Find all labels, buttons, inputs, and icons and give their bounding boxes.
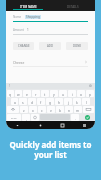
- button[interactable]: f: [37, 98, 45, 105]
- button[interactable]: Recents: [51, 121, 73, 129]
- staticText: Cheese: [13, 60, 84, 64]
- staticText: ?123: [11, 116, 17, 119]
- staticText: d: [31, 100, 34, 104]
- button[interactable]: CHANGE: [13, 42, 34, 50]
- staticText: j: [68, 100, 69, 104]
- staticText: q: [9, 92, 12, 96]
- staticText: u: [62, 92, 65, 96]
- button[interactable]: g: [46, 98, 54, 105]
- staticText: k: [76, 100, 78, 104]
- button[interactable]: k: [73, 98, 81, 105]
- button[interactable]: .: [71, 114, 79, 121]
- button[interactable]: o: [77, 90, 85, 97]
- staticText: Amount: [13, 28, 24, 32]
- button[interactable]: c: [38, 106, 46, 113]
- button[interactable]: ,: [22, 114, 30, 121]
- staticText: p: [89, 92, 92, 96]
- button[interactable]: l: [82, 98, 90, 105]
- button[interactable]: x: [29, 106, 37, 113]
- staticText: c: [41, 108, 43, 112]
- staticText: e: [26, 92, 28, 96]
- staticText: s: [22, 100, 24, 104]
- button[interactable]: Emoji: [31, 114, 39, 121]
- button[interactable]: a: [11, 98, 18, 105]
- staticText: DONE: [73, 44, 81, 48]
- button[interactable]: s: [19, 98, 27, 105]
- staticText: Name: [13, 15, 22, 19]
- staticText: l: [86, 100, 87, 104]
- button[interactable]: m: [74, 106, 82, 113]
- staticText: !: [9, 84, 10, 88]
- staticText: h: [58, 100, 61, 104]
- button[interactable]: Enter: [80, 113, 94, 121]
- staticText: f: [40, 100, 42, 104]
- button[interactable]: b: [56, 106, 64, 113]
- button[interactable]: v: [47, 106, 55, 113]
- staticText: i: [72, 92, 73, 96]
- staticText: 1: [27, 28, 29, 32]
- button[interactable]: e: [23, 90, 31, 97]
- staticText: a: [14, 100, 16, 104]
- staticText: y: [53, 92, 55, 96]
- button[interactable]: DETAILS: [50, 2, 95, 11]
- button[interactable]: y: [50, 90, 58, 97]
- button[interactable]: Back: [6, 121, 29, 129]
- button[interactable]: p: [86, 90, 94, 97]
- staticText: z: [23, 108, 25, 112]
- staticText: Shopping: [26, 15, 40, 19]
- button[interactable]: z: [20, 106, 28, 113]
- button[interactable]: Menu: [73, 121, 95, 129]
- staticText: x: [32, 108, 34, 112]
- button[interactable]: Cheese: [13, 57, 88, 66]
- staticText: g: [49, 100, 52, 104]
- staticText: t: [44, 92, 46, 96]
- staticText: Quickly add items to your list: [6, 139, 95, 161]
- button[interactable]: n: [65, 106, 73, 113]
- button[interactable]: Backspace: [83, 106, 94, 113]
- staticText: r: [35, 92, 37, 96]
- staticText: ADD: [47, 44, 53, 48]
- staticText: .: [75, 116, 76, 120]
- button[interactable]: j: [64, 98, 72, 105]
- button[interactable]: ITEM NAME: [6, 2, 50, 11]
- staticText: o: [80, 92, 82, 96]
- button[interactable]: u: [59, 90, 67, 97]
- button[interactable]: q: [7, 90, 14, 97]
- staticText: w: [17, 92, 20, 96]
- button[interactable]: h: [55, 98, 63, 105]
- button[interactable]: t: [41, 90, 49, 97]
- staticText: b: [59, 108, 62, 112]
- button[interactable]: Shift: [7, 106, 19, 113]
- button[interactable]: Home: [29, 121, 51, 129]
- button[interactable]: d: [28, 98, 36, 105]
- staticText: ⚙: [89, 84, 92, 88]
- staticText: n: [68, 108, 71, 112]
- button[interactable]: ?123: [7, 114, 21, 121]
- staticText: ITEM NAME: [20, 5, 37, 9]
- staticText: CHANGE: [18, 44, 30, 48]
- staticText: m: [76, 108, 80, 112]
- button[interactable]: r: [32, 90, 40, 97]
- button[interactable]: i: [68, 90, 76, 97]
- staticText: DETAILS: [67, 5, 79, 9]
- button[interactable]: DONE: [66, 42, 88, 50]
- staticText: v: [50, 108, 52, 112]
- button[interactable]: ADD: [39, 42, 61, 50]
- button[interactable]: w: [15, 90, 22, 97]
